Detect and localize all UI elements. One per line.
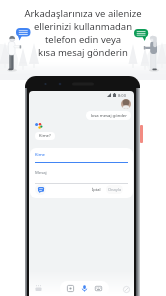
staticText: İptal (92, 187, 101, 192)
staticText: Kime? (39, 133, 51, 139)
button[interactable]: Google Lens (67, 285, 74, 292)
button[interactable]: Keyboard input (95, 285, 102, 292)
staticText: Mesaj (35, 170, 47, 176)
staticText: Onayla (108, 187, 122, 192)
staticText: kısa mesaj gönder (91, 113, 127, 119)
button[interactable]: Messages app (35, 184, 46, 195)
button[interactable]: kısa mesaj gönder (86, 111, 131, 120)
button[interactable]: Onayla (106, 185, 123, 194)
staticText: Kime (35, 152, 45, 158)
button[interactable]: Kime? (35, 132, 55, 140)
button[interactable]: Voice search (81, 285, 88, 292)
button[interactable]: İptal (90, 185, 103, 194)
button[interactable]: Keyboard (35, 285, 42, 292)
button[interactable]: Explore (123, 286, 130, 293)
staticText: 8:00 (118, 93, 126, 98)
staticText: Arkadaşlarınıza ve ailenize ellerinizi k… (24, 7, 142, 59)
